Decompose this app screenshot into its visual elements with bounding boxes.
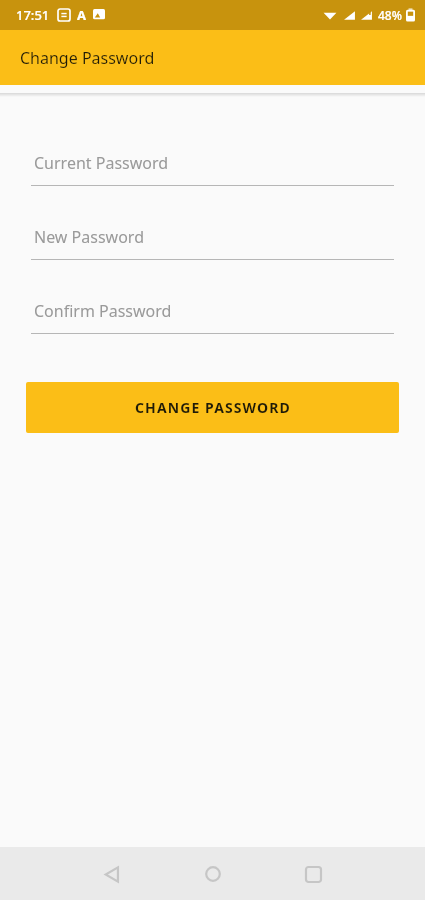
staticText: CHANGE PASSWORD [135,398,291,417]
staticText: Change Password [20,47,155,69]
button[interactable]: New Password [31,226,394,260]
button[interactable]: CHANGE PASSWORD [26,382,399,433]
staticText: Confirm Password [34,300,172,322]
button[interactable]: Current Password [31,152,394,186]
staticText: 17:51 [16,6,50,24]
staticText: 48% [378,7,402,23]
staticText: A [77,6,86,24]
button[interactable]: Recents [291,852,335,896]
button[interactable]: Back [90,852,134,896]
button[interactable]: Home [191,852,235,896]
button[interactable]: Confirm Password [31,300,394,334]
staticText: New Password [34,226,144,248]
staticText: Current Password [34,152,169,174]
